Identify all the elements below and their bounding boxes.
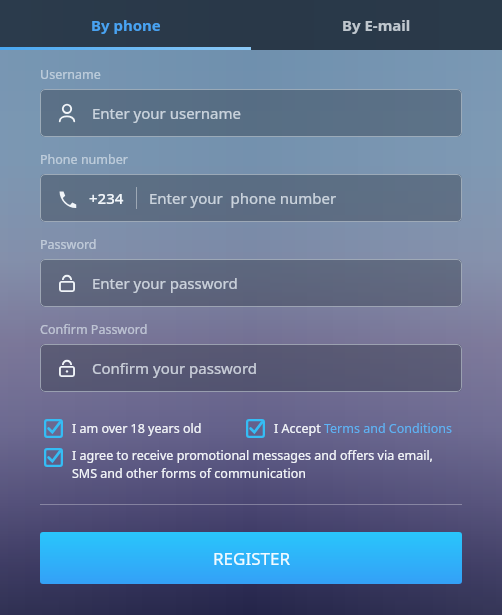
staticText: REGISTER <box>213 547 290 570</box>
button[interactable]: I Accept Terms and Conditions <box>246 419 458 438</box>
button[interactable]: I agree to receive promotional messages … <box>44 447 458 482</box>
staticText: I am over 18 years old <box>72 420 202 437</box>
staticText: Enter your password <box>92 273 238 293</box>
button[interactable]: By E-mail <box>251 0 502 50</box>
staticText: I agree to receive promotional messages … <box>72 447 458 482</box>
staticText: I Accept Terms and Conditions <box>274 420 452 437</box>
button[interactable]: Enter your username <box>40 89 462 137</box>
button[interactable]: Enter your password <box>40 259 462 307</box>
staticText: By phone <box>91 15 161 35</box>
staticText: Password <box>40 236 97 253</box>
button[interactable]: I am over 18 years old <box>44 419 246 438</box>
staticText: Phone number <box>40 151 128 168</box>
button[interactable]: By phone <box>0 0 251 50</box>
staticText: Confirm your password <box>92 358 258 378</box>
button[interactable]: +234 <box>40 174 462 222</box>
staticText: By E-mail <box>342 15 411 35</box>
staticText: Username <box>40 66 101 83</box>
staticText: Enter your username <box>92 103 241 123</box>
staticText: Enter your phone number <box>149 188 337 208</box>
staticText: Confirm Password <box>40 321 148 338</box>
staticText: +234 <box>89 188 124 208</box>
button[interactable]: Confirm your password <box>40 344 462 392</box>
button[interactable]: REGISTER <box>40 532 462 584</box>
